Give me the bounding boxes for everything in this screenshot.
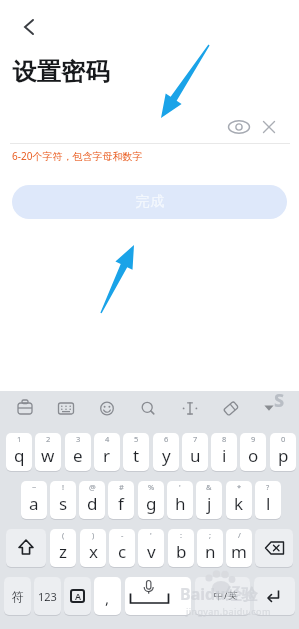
button[interactable]: # bbox=[108, 481, 134, 519]
staticText: r bbox=[103, 444, 111, 467]
staticText: # bbox=[119, 482, 124, 492]
staticText: 7 bbox=[193, 434, 198, 444]
staticText: ~ bbox=[32, 482, 37, 492]
button[interactable]: % bbox=[138, 481, 164, 519]
staticText: k bbox=[234, 492, 244, 515]
staticText: @ bbox=[89, 482, 96, 492]
button[interactable]: 3 bbox=[65, 433, 91, 471]
button[interactable]: : bbox=[168, 529, 194, 567]
button[interactable]: / bbox=[226, 529, 252, 567]
button[interactable]: , bbox=[94, 577, 121, 615]
staticText: - bbox=[121, 530, 124, 540]
staticText: : bbox=[180, 530, 183, 540]
button[interactable] bbox=[6, 529, 46, 567]
button[interactable]: ' bbox=[138, 529, 164, 567]
staticText: ) bbox=[92, 530, 95, 540]
button[interactable]: & bbox=[196, 481, 222, 519]
staticText: / bbox=[238, 530, 241, 540]
staticText: 设置密码 bbox=[12, 57, 110, 87]
staticText: 6-20个字符，包含字母和数字 bbox=[12, 149, 143, 163]
staticText: S bbox=[274, 388, 285, 413]
button[interactable]: - bbox=[109, 529, 135, 567]
button[interactable]: 符 bbox=[4, 577, 31, 615]
staticText: i bbox=[222, 444, 227, 467]
button[interactable]: 7 bbox=[182, 433, 208, 471]
button[interactable]: 完成 bbox=[12, 185, 287, 219]
staticText: l bbox=[266, 492, 271, 515]
staticText: 2 bbox=[46, 434, 51, 444]
button[interactable]: 123 bbox=[34, 577, 61, 615]
staticText: ; bbox=[209, 530, 212, 540]
button[interactable] bbox=[255, 529, 293, 567]
button[interactable] bbox=[16, 14, 42, 40]
staticText: 符 bbox=[12, 589, 24, 604]
staticText: h bbox=[175, 492, 186, 515]
staticText: c bbox=[118, 540, 127, 563]
staticText: A bbox=[75, 590, 82, 602]
staticText: 4 bbox=[105, 434, 110, 444]
staticText: v bbox=[147, 540, 156, 563]
staticText: f bbox=[118, 492, 124, 515]
staticText: x bbox=[89, 540, 98, 563]
staticText: 123 bbox=[38, 589, 57, 604]
staticText: g bbox=[146, 492, 157, 515]
staticText: n bbox=[205, 540, 216, 563]
button[interactable] bbox=[227, 117, 251, 137]
staticText: % bbox=[148, 482, 155, 492]
staticText: jingyan.baidu.com bbox=[186, 605, 271, 617]
staticText: o bbox=[248, 444, 259, 467]
button[interactable]: ; bbox=[197, 529, 223, 567]
staticText: u bbox=[190, 444, 201, 467]
button[interactable]: 6 bbox=[153, 433, 179, 471]
staticText: ( bbox=[62, 530, 65, 540]
staticText: 3 bbox=[76, 434, 81, 444]
button[interactable]: @ bbox=[79, 481, 105, 519]
staticText: d bbox=[87, 492, 98, 515]
staticText: ' bbox=[179, 482, 181, 492]
button[interactable]: 4 bbox=[94, 433, 120, 471]
button[interactable]: ( bbox=[50, 529, 76, 567]
staticText: z bbox=[59, 540, 67, 563]
staticText: e bbox=[73, 444, 83, 467]
button[interactable] bbox=[261, 119, 277, 135]
button[interactable]: 5 bbox=[123, 433, 149, 471]
button[interactable] bbox=[254, 577, 295, 615]
staticText: 5 bbox=[134, 434, 139, 444]
button[interactable]: * bbox=[226, 481, 252, 519]
button[interactable] bbox=[125, 577, 191, 615]
staticText: 9 bbox=[251, 434, 256, 444]
staticText: 0 bbox=[281, 434, 286, 444]
button[interactable]: ! bbox=[50, 481, 76, 519]
staticText: a bbox=[29, 492, 39, 515]
staticText: 6 bbox=[164, 434, 169, 444]
staticText: t bbox=[133, 444, 140, 467]
staticText: , bbox=[105, 588, 110, 608]
staticText: y bbox=[162, 444, 171, 467]
button[interactable]: 0 bbox=[270, 433, 296, 471]
staticText: 完成 bbox=[135, 193, 165, 211]
button[interactable]: A bbox=[64, 577, 91, 615]
staticText: & bbox=[206, 482, 212, 492]
staticText: j bbox=[207, 492, 212, 515]
button[interactable]: ' bbox=[167, 481, 193, 519]
button[interactable]: ) bbox=[80, 529, 106, 567]
button[interactable]: 9 bbox=[240, 433, 266, 471]
button[interactable]: 中/英 bbox=[195, 577, 250, 615]
staticText: ? bbox=[266, 482, 270, 492]
button[interactable]: 2 bbox=[35, 433, 61, 471]
button[interactable]: 8 bbox=[211, 433, 237, 471]
staticText: 中/英 bbox=[214, 588, 238, 602]
staticText: b bbox=[176, 540, 187, 563]
staticText: ! bbox=[62, 482, 65, 492]
staticText: 8 bbox=[222, 434, 227, 444]
staticText: ' bbox=[150, 530, 152, 540]
button[interactable]: 1 bbox=[6, 433, 32, 471]
staticText: p bbox=[278, 444, 289, 467]
button[interactable]: ~ bbox=[21, 481, 47, 519]
staticText: Baidu经验 bbox=[180, 583, 258, 605]
staticText: w bbox=[41, 444, 55, 467]
staticText: q bbox=[14, 444, 25, 467]
button[interactable]: ? bbox=[255, 481, 281, 519]
staticText: 1 bbox=[17, 434, 22, 444]
staticText: s bbox=[59, 492, 68, 515]
